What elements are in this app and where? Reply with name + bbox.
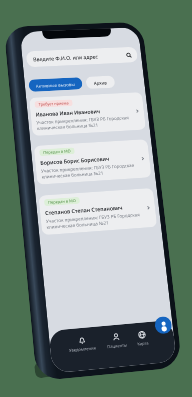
staticText: Архив [93,80,107,86]
staticText: Уведомления [68,345,96,353]
button[interactable]: Передан в МО [34,139,152,185]
staticText: Участок прикрепления: ГБУЗ РБ Городская … [36,114,133,131]
button[interactable]: Введите Ф.И.О. или адрес [25,47,138,67]
staticText: Требует приема [38,100,69,107]
staticText: Пациенты [107,342,127,349]
staticText: Участок прикрепления: ГБУЗ РБ Городская … [46,211,144,230]
staticText: Передан в МО [43,148,71,155]
staticText: Иванова Иван Иванович [35,107,101,118]
button[interactable]: Карта [134,330,151,347]
staticText: Карта [137,340,149,346]
button[interactable]: Добавить пациента [154,316,173,334]
button[interactable]: Передан в МО [38,188,157,235]
staticText: Передан в МО [48,198,76,205]
staticText: Борисов Борис Борисович [40,155,110,166]
button[interactable]: Уведомления [65,335,98,353]
staticText: Участок прикрепления: ГБУЗ РБ Городская … [41,162,139,180]
button[interactable]: Пациенты [104,332,129,350]
staticText: Степанов Степан Степанович [45,204,123,216]
button[interactable]: Архив [85,75,115,89]
staticText: Активные вызовы [35,81,76,89]
staticText: Введите Ф.И.О. или адрес [33,53,99,62]
button[interactable]: Активные вызовы [28,77,83,92]
button[interactable]: Требует приема [29,92,146,136]
